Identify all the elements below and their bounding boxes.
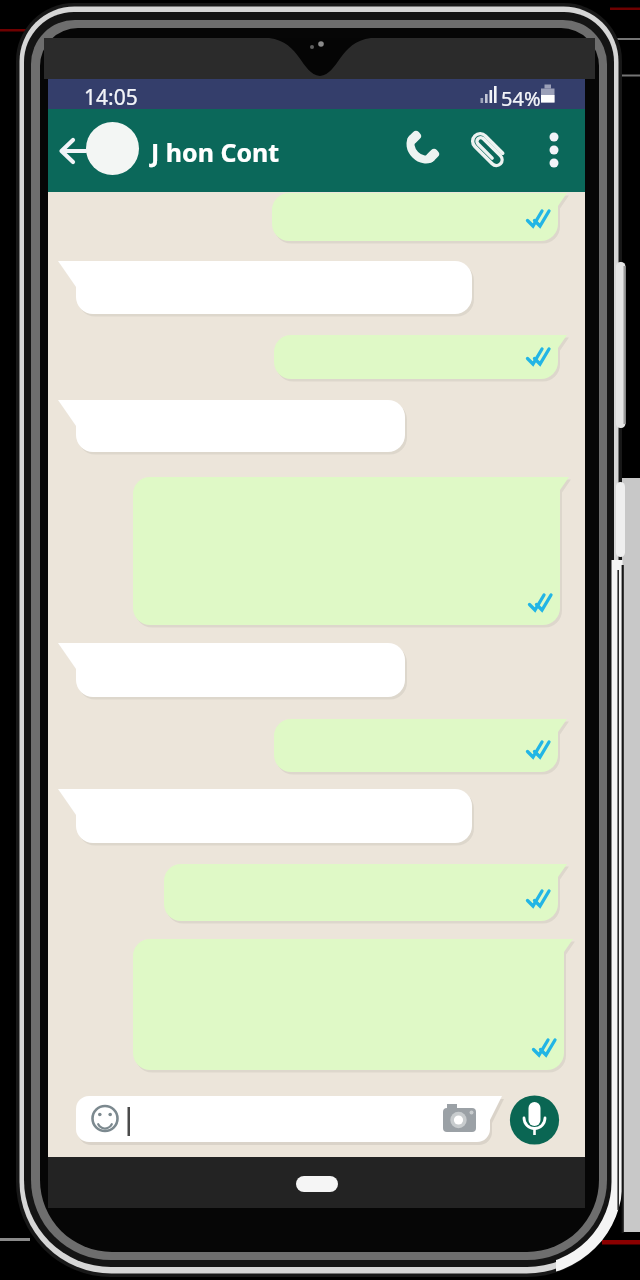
button[interactable] [510, 1095, 560, 1145]
staticText: 54% [501, 85, 541, 112]
button[interactable] [86, 122, 139, 175]
staticText: 14:05 [84, 83, 138, 112]
button[interactable] [52, 135, 94, 167]
button[interactable] [534, 126, 574, 176]
button[interactable] [465, 126, 515, 176]
button[interactable] [398, 126, 448, 176]
button[interactable] [76, 1096, 502, 1142]
button[interactable] [88, 1102, 122, 1136]
staticText: J hon Cont [151, 135, 280, 169]
button[interactable] [440, 1100, 480, 1138]
